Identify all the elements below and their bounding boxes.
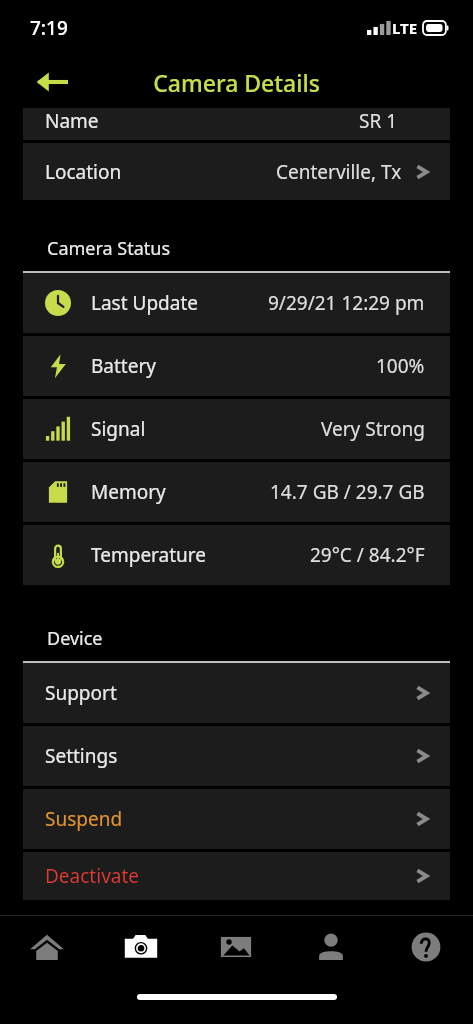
button[interactable]: Profile	[283, 916, 378, 978]
staticText: Very Strong	[321, 416, 425, 442]
staticText: Device	[47, 626, 103, 651]
staticText: 14.7 GB / 29.7 GB	[270, 479, 425, 505]
button[interactable]: Deactivate	[23, 852, 450, 900]
staticText: Support	[45, 680, 117, 706]
staticText: Suspend	[45, 806, 123, 832]
staticText: Settings	[45, 743, 118, 769]
button[interactable]: Home	[0, 916, 94, 978]
staticText: Temperature	[91, 542, 207, 568]
button[interactable]: Temperature	[23, 525, 450, 585]
staticText: Battery	[91, 353, 156, 379]
staticText: Name	[45, 108, 99, 134]
button[interactable]: Camera	[94, 916, 188, 978]
staticText: Camera Status	[47, 236, 171, 261]
staticText: Memory	[91, 479, 166, 505]
staticText: Last Update	[91, 290, 199, 316]
button[interactable]: Gallery	[188, 916, 283, 978]
button[interactable]: Signal	[23, 399, 450, 459]
button[interactable]: Support	[23, 663, 450, 723]
staticText: 9/29/21 12:29 pm	[268, 290, 425, 316]
button[interactable]: Settings	[23, 726, 450, 786]
button[interactable]: Help	[378, 916, 473, 978]
staticText: Deactivate	[45, 863, 140, 889]
button[interactable]: Battery	[23, 336, 450, 396]
staticText: SR 1	[359, 108, 398, 134]
staticText: Signal	[91, 416, 146, 442]
staticText: Camera Details	[153, 67, 320, 98]
button[interactable]: Suspend	[23, 789, 450, 849]
button[interactable]: Back	[30, 60, 74, 104]
button[interactable]: Location	[23, 143, 450, 200]
button[interactable]: Last Update	[23, 273, 450, 333]
button[interactable]: Name	[23, 108, 450, 140]
staticText: 100%	[376, 353, 425, 379]
staticText: 7:19	[30, 15, 68, 41]
staticText: Centerville, Tx	[276, 159, 402, 185]
staticText: LTE	[392, 18, 418, 38]
staticText: Location	[45, 159, 122, 185]
staticText: 29°C / 84.2°F	[310, 542, 425, 568]
button[interactable]: Memory	[23, 462, 450, 522]
